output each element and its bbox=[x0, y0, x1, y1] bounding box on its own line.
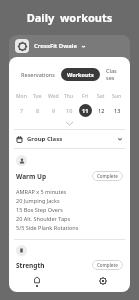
button[interactable]: 9 bbox=[47, 104, 60, 117]
staticText: 11 bbox=[82, 107, 89, 114]
button[interactable]: Classes bbox=[100, 64, 124, 84]
staticText: 15 Box Step Overs bbox=[16, 206, 63, 213]
staticText: 7 bbox=[20, 107, 24, 114]
staticText: Warm Up bbox=[16, 172, 47, 181]
staticText: Classes bbox=[106, 67, 118, 81]
staticText: Mon bbox=[16, 93, 27, 100]
staticText: Fri bbox=[82, 93, 89, 100]
button[interactable]: Complete bbox=[92, 260, 123, 270]
staticText: Wed bbox=[48, 93, 59, 100]
staticText: 20 Alt. Shoulder Taps bbox=[16, 215, 71, 222]
button[interactable]: CrossFit Dwale bbox=[9, 35, 130, 57]
button[interactable]: Home bbox=[17, 270, 57, 292]
staticText: Workouts bbox=[67, 71, 94, 78]
staticText: AMRAP x 5 minutes bbox=[16, 188, 67, 195]
button[interactable]: Reservations bbox=[15, 68, 61, 81]
button[interactable]: Settings bbox=[83, 270, 123, 292]
button[interactable]: Workouts bbox=[61, 68, 100, 81]
staticText: 10 bbox=[66, 107, 73, 114]
button[interactable]: Group Class bbox=[9, 130, 130, 148]
staticText: 5/5 Side Plank Rotations bbox=[16, 224, 79, 231]
staticText: 9 bbox=[52, 107, 56, 114]
button[interactable]: 7 bbox=[15, 104, 28, 117]
button[interactable]: 13 bbox=[111, 104, 124, 117]
button[interactable]: 10 bbox=[63, 104, 76, 117]
staticText: Thu bbox=[64, 93, 74, 100]
staticText: Reservations bbox=[21, 71, 55, 78]
staticText: Group Class bbox=[27, 135, 63, 143]
staticText: 12 bbox=[98, 107, 105, 114]
staticText: Complete bbox=[97, 173, 118, 179]
staticText: 8 bbox=[36, 107, 40, 114]
button[interactable]: 8 bbox=[31, 104, 44, 117]
staticText: 13 bbox=[114, 107, 121, 114]
staticText: Strength bbox=[16, 261, 45, 270]
staticText: Tue bbox=[33, 93, 42, 100]
button[interactable]: 12 bbox=[95, 104, 108, 117]
button[interactable]: 11 bbox=[79, 104, 92, 117]
staticText: Sun bbox=[112, 93, 122, 100]
staticText: Daily workouts bbox=[0, 10, 139, 25]
staticText: CrossFit Dwale bbox=[34, 42, 77, 50]
staticText: 20 Jumping Jacks bbox=[16, 197, 60, 204]
staticText: Sat bbox=[97, 93, 105, 100]
button[interactable]: Complete bbox=[92, 171, 123, 181]
staticText: Complete bbox=[97, 262, 118, 268]
